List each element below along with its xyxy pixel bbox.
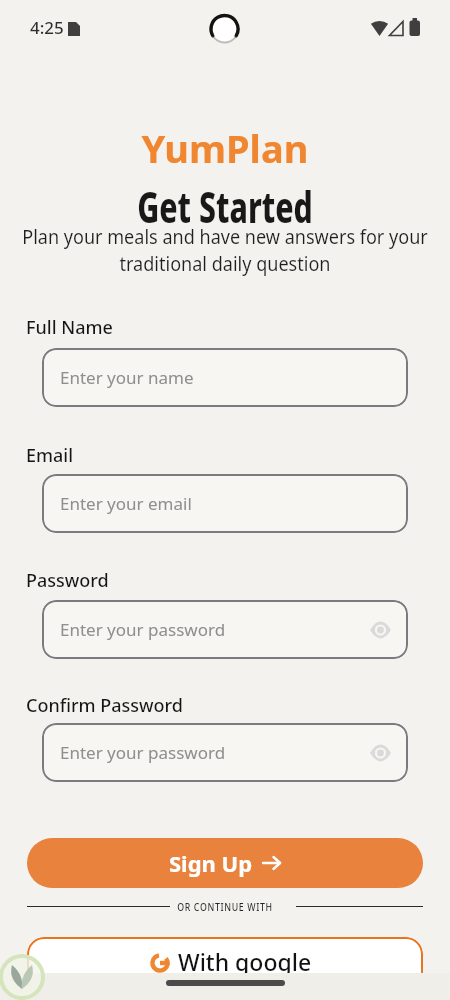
staticText: Enter your password xyxy=(60,618,226,641)
staticText: Enter your name xyxy=(60,366,194,389)
staticText: Sign Up xyxy=(169,848,253,878)
staticText: With google xyxy=(178,946,312,977)
staticText: Enter your email xyxy=(60,492,192,515)
button[interactable]: Enter your name xyxy=(42,348,408,407)
staticText: Password xyxy=(26,568,109,593)
staticText: YumPlan xyxy=(0,122,450,174)
button[interactable]: Enter your password xyxy=(42,600,408,659)
button[interactable]: With google xyxy=(27,937,423,989)
staticText: Plan your meals and have new answers for… xyxy=(11,224,439,277)
staticText: 4:25 xyxy=(30,16,64,39)
staticText: OR CONTINUE WITH xyxy=(45,899,405,914)
button[interactable]: Enter your email xyxy=(42,474,408,533)
staticText: Full Name xyxy=(26,315,113,340)
staticText: Get Started xyxy=(63,178,387,235)
staticText: Confirm Password xyxy=(26,693,184,718)
button[interactable]: Enter your password xyxy=(42,723,408,782)
button[interactable]: Sign Up xyxy=(27,838,423,888)
staticText: Email xyxy=(26,443,74,468)
staticText: Enter your password xyxy=(60,741,226,764)
